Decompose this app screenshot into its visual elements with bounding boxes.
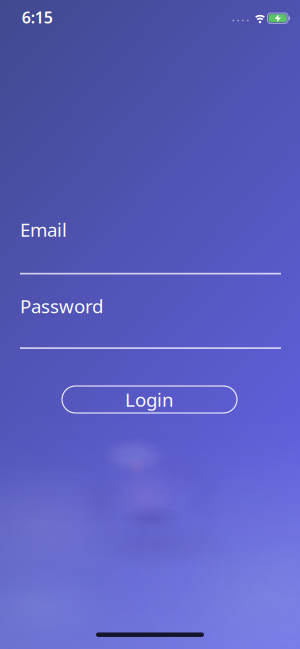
staticText: 6:15 [22,7,53,28]
staticText: Password [20,293,103,318]
staticText: Email [20,217,67,242]
button[interactable]: Email text field [20,242,281,274]
button[interactable]: Login [62,386,237,413]
staticText: Login [125,387,174,412]
button[interactable]: Password text field [20,318,281,349]
